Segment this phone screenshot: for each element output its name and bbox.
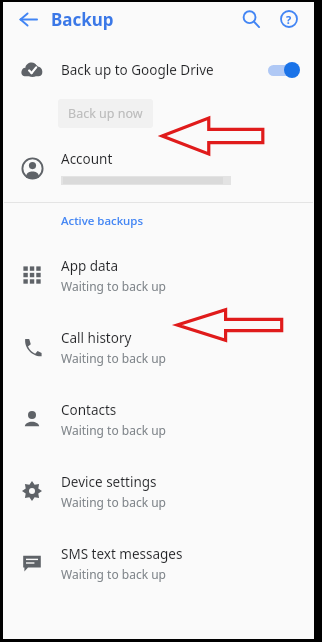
button[interactable]: Account <box>3 134 314 202</box>
button[interactable]: Device settings <box>3 455 314 527</box>
button[interactable]: Help <box>272 2 306 36</box>
button[interactable]: Call history <box>3 311 314 383</box>
button[interactable]: Back <box>11 2 45 36</box>
staticText: Waiting to back up <box>61 494 167 510</box>
staticText: Call history <box>61 329 132 347</box>
staticText: Account <box>61 150 113 168</box>
staticText: SMS text messages <box>61 545 183 563</box>
staticText: Waiting to back up <box>61 350 167 366</box>
button[interactable]: Back up now <box>58 99 153 128</box>
staticText: Active backups <box>61 213 144 229</box>
staticText: App data <box>61 257 119 275</box>
staticText: Contacts <box>61 401 117 419</box>
button[interactable]: Back up to Google Drive <box>3 48 314 92</box>
staticText: Back up to Google Drive <box>61 61 214 79</box>
staticText: ? <box>286 12 292 27</box>
staticText: Waiting to back up <box>61 566 167 582</box>
button[interactable]: Search <box>234 2 268 36</box>
staticText: Device settings <box>61 473 157 491</box>
button[interactable]: SMS text messages <box>3 527 314 599</box>
staticText: Back up now <box>68 105 143 122</box>
button[interactable]: App data <box>3 239 314 311</box>
staticText: Waiting to back up <box>61 278 167 294</box>
staticText: Waiting to back up <box>61 422 167 438</box>
button[interactable]: Contacts <box>3 383 314 455</box>
staticText: Backup <box>51 8 114 31</box>
